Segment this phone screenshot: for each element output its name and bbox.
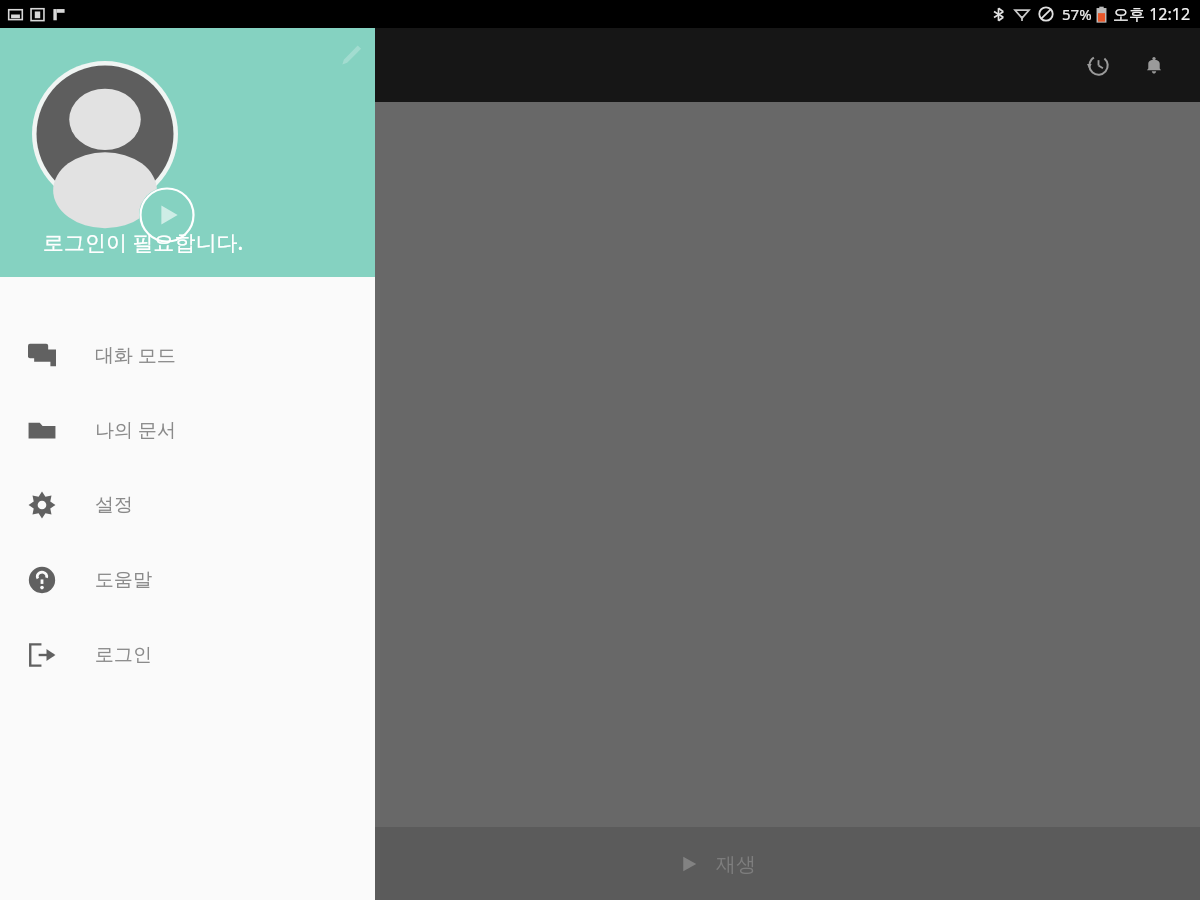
- button[interactable]: Play intro: [139, 187, 195, 243]
- staticText: 57%: [1062, 4, 1092, 24]
- button[interactable]: 대화 모드: [0, 317, 375, 392]
- button[interactable]: Edit profile: [329, 33, 373, 77]
- button[interactable]: 재생: [232, 827, 1200, 900]
- button[interactable]: 나의 문서: [0, 392, 375, 467]
- staticText: 설정: [95, 493, 133, 517]
- staticText: 도움말: [95, 568, 152, 592]
- staticText: 로그인이 필요합니다.: [43, 228, 244, 257]
- button[interactable]: History: [1074, 41, 1122, 89]
- button[interactable]: 설정: [0, 467, 375, 542]
- button[interactable]: 도움말: [0, 542, 375, 617]
- staticText: 나의 문서: [95, 417, 176, 443]
- staticText: 로그인: [95, 643, 152, 667]
- button[interactable]: 로그인: [0, 617, 375, 692]
- staticText: 재생: [716, 852, 756, 877]
- staticText: 대화 모드: [95, 342, 176, 368]
- button[interactable]: Notifications: [1130, 41, 1178, 89]
- button[interactable]: Profile photo: [32, 61, 178, 207]
- staticText: 오후 12:12: [1113, 3, 1191, 25]
